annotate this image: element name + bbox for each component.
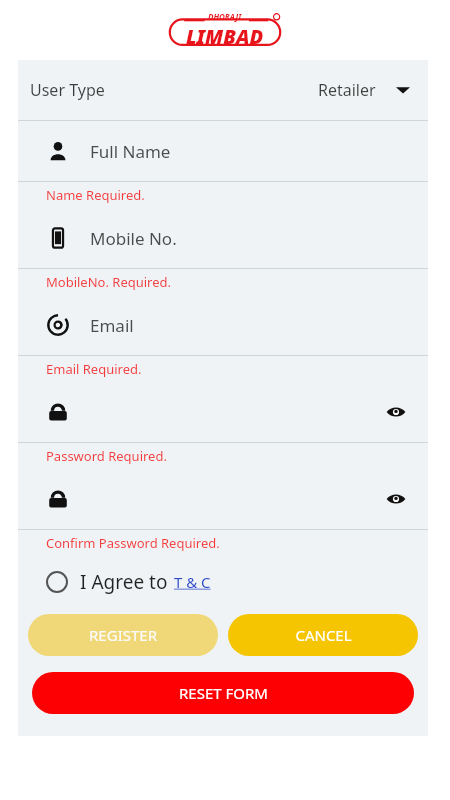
button[interactable]: Show password bbox=[18, 469, 428, 529]
button[interactable]: REGISTER bbox=[28, 614, 218, 656]
staticText: Retailer bbox=[318, 79, 376, 101]
staticText: RESET FORM bbox=[179, 683, 268, 703]
button[interactable]: T & C bbox=[174, 572, 211, 592]
staticText: Email Required. bbox=[46, 360, 142, 378]
staticText: Confirm Password Required. bbox=[46, 534, 220, 552]
button[interactable]: RESET FORM bbox=[32, 672, 414, 714]
staticText: DHORAJI bbox=[208, 11, 242, 22]
button[interactable]: Mobile No. bbox=[18, 208, 428, 268]
button[interactable]: Show password bbox=[382, 485, 410, 513]
button[interactable]: Email bbox=[18, 295, 428, 355]
button[interactable]: I Agree to bbox=[18, 556, 428, 608]
staticText: Email bbox=[90, 314, 134, 337]
button[interactable]: Full Name bbox=[18, 121, 428, 181]
staticText: LIMBAD bbox=[186, 23, 264, 50]
button[interactable]: Show password bbox=[18, 382, 428, 442]
staticText: Name Required. bbox=[46, 186, 145, 204]
button[interactable]: Show password bbox=[382, 398, 410, 426]
button[interactable]: CANCEL bbox=[228, 614, 418, 656]
staticText: Password Required. bbox=[46, 447, 167, 465]
button[interactable]: User Type bbox=[18, 60, 428, 120]
staticText: Mobile No. bbox=[90, 227, 177, 250]
staticText: T & C bbox=[174, 572, 211, 592]
staticText: MobileNo. Required. bbox=[46, 273, 172, 291]
staticText: REGISTER bbox=[89, 625, 157, 645]
staticText: CANCEL bbox=[295, 625, 352, 645]
staticText: Full Name bbox=[90, 140, 171, 163]
staticText: I Agree to bbox=[80, 569, 168, 595]
staticText: User Type bbox=[30, 79, 105, 101]
